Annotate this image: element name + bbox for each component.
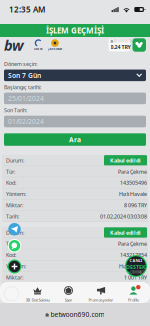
staticText: DESTEK <box>126 263 146 270</box>
staticText: Son 7 Gün <box>8 71 41 80</box>
button[interactable]: 01/02/2024 <box>4 116 146 127</box>
staticText: ÇEVRİMİÇİ <box>130 271 144 274</box>
staticText: bw <box>4 35 24 55</box>
staticText: 8 096 TRY <box>124 202 147 209</box>
staticText: ID 6093373 <box>114 39 132 43</box>
staticText: Yöntem: <box>6 190 26 198</box>
staticText: 01/02/2024 <box>8 117 44 126</box>
staticText: 143217854 <box>120 251 147 259</box>
staticText: Durum: <box>6 229 24 236</box>
button[interactable]: Son 7 Gün <box>4 69 146 81</box>
staticText: Başlangıç tarihi: <box>4 84 41 91</box>
staticText: betwoon690.com <box>50 310 104 319</box>
staticText: Hızlı Havale <box>119 190 147 198</box>
staticText: Kabul edildi <box>110 157 141 164</box>
button[interactable]: 25/01/2024 <box>4 93 146 104</box>
button[interactable]: Telegram <box>8 223 21 235</box>
staticText: Miktar: <box>6 202 23 209</box>
staticText: Spor <box>64 297 72 302</box>
button[interactable]: 3B Slot Salonu <box>23 285 52 302</box>
staticText: 3B Slot Salonu <box>25 297 49 302</box>
staticText: Ara <box>69 135 81 144</box>
button[interactable]: Canlı Destek <box>125 255 147 277</box>
staticText: İŞLEM GEÇMİŞİ <box>46 25 104 36</box>
staticText: Promosyonlar <box>88 297 113 302</box>
staticText: Dönem seçin: <box>4 60 37 68</box>
staticText: 0.24 TRY <box>110 43 130 50</box>
button[interactable]: Ekle <box>7 259 21 273</box>
staticText: 12:35 AM <box>9 4 45 15</box>
button[interactable]: Spor <box>52 285 85 302</box>
button[interactable]: WhatsApp <box>8 239 21 252</box>
staticText: DESTEK <box>34 47 43 51</box>
staticText: Kod: <box>6 179 16 186</box>
staticText: Hızlı Havale <box>119 263 147 270</box>
staticText: 143505496 <box>120 179 147 186</box>
staticText: Para Çekme <box>118 240 147 247</box>
button[interactable]: Çarkıfelek <box>47 39 63 51</box>
staticText: Miktar: <box>6 274 23 281</box>
staticText: Kabul edildi <box>110 229 141 236</box>
staticText: Tür: <box>6 168 15 175</box>
staticText: 25/01/2024 <box>8 94 44 103</box>
staticText: ÇARKIFELEK <box>47 47 62 51</box>
staticText: Tarih: <box>6 213 19 220</box>
staticText: Tür: <box>6 240 15 247</box>
staticText: Son Tarih: <box>4 107 27 114</box>
staticText: 01.02.2024 03:03:08 <box>100 213 147 220</box>
button[interactable]: Para Yatır <box>132 38 146 52</box>
button[interactable]: Promosyonlar <box>85 285 117 302</box>
staticText: Durum: <box>6 157 24 164</box>
staticText: CANLI <box>129 258 142 263</box>
staticText: Yöntem: <box>6 263 26 270</box>
staticText: Para Çekme <box>118 168 147 175</box>
staticText: Kod: <box>6 251 16 259</box>
staticText: 1 001 TRY <box>124 274 147 281</box>
button[interactable]: Profile <box>117 285 150 302</box>
button[interactable]: Ara <box>4 133 146 146</box>
staticText: Profile <box>128 297 139 302</box>
button[interactable]: Destek <box>32 39 45 51</box>
